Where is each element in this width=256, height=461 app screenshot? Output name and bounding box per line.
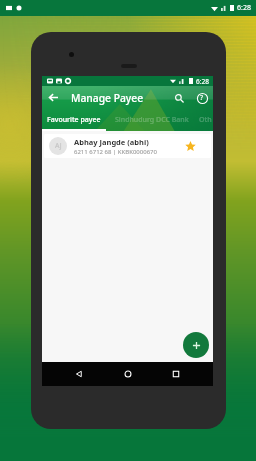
button[interactable]: Add payee [183,332,209,358]
button[interactable]: Sindhudurg DCC Bank [106,109,198,131]
button[interactable]: Recents [165,363,187,385]
button[interactable]: Back [68,363,90,385]
button[interactable]: Search [170,89,188,107]
staticText: Manage Payee [71,91,144,105]
staticText: 6:28 [237,3,251,13]
staticText: 6:28 [196,77,209,86]
button[interactable]: Back [44,88,63,107]
staticText: Favourite payee [47,115,101,125]
staticText: Abhay Jangde (abhi) [74,137,149,147]
button[interactable]: Favourite [182,138,198,154]
staticText: Sindhudurg DCC Bank [115,115,189,125]
button[interactable]: Home [117,363,139,385]
staticText: ? [200,93,204,103]
staticText: AJ [55,141,62,151]
button[interactable]: Help [193,89,211,107]
button[interactable]: Oth [198,109,213,131]
button[interactable]: Favourite payee [42,109,106,131]
staticText: 6211 6712 68 | KKBK0000670 [74,148,157,156]
button[interactable]: AJ [44,134,211,158]
staticText: Oth [199,115,212,125]
